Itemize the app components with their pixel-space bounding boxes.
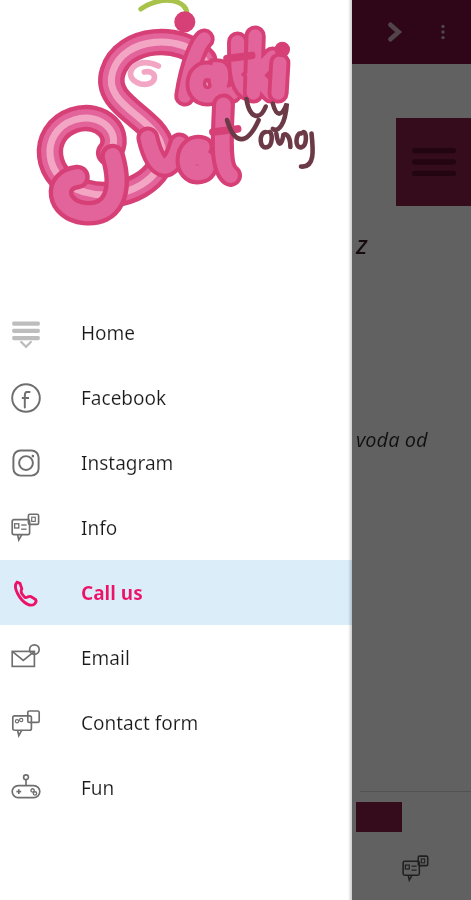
- button[interactable]: Info: [0, 495, 352, 560]
- button[interactable]: Instagram: [0, 430, 352, 495]
- staticText: voda od: [356, 426, 428, 453]
- staticText: Email: [81, 645, 130, 671]
- button[interactable]: Fun: [0, 755, 352, 820]
- button[interactable]: Call us: [0, 560, 352, 625]
- button[interactable]: Facebook: [0, 365, 352, 430]
- button[interactable]: Home: [0, 300, 352, 365]
- button[interactable]: Next: [370, 8, 418, 56]
- staticText: Contact form: [81, 710, 199, 736]
- staticText: Fun: [81, 775, 115, 801]
- staticText: Instagram: [81, 450, 174, 476]
- button[interactable]: Contact form: [0, 690, 352, 755]
- button[interactable]: More options: [423, 12, 463, 52]
- staticText: Info: [81, 515, 118, 541]
- button[interactable]: Email: [0, 625, 352, 690]
- button[interactable]: [396, 118, 471, 206]
- button[interactable]: Info: [392, 845, 440, 893]
- staticText: Facebook: [81, 385, 167, 411]
- staticText: Home: [81, 320, 136, 346]
- staticText: z: [356, 226, 368, 261]
- staticText: Call us: [81, 580, 143, 606]
